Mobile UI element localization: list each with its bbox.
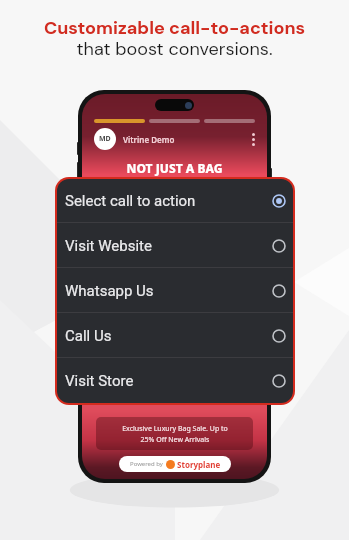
button[interactable]: Whatsapp Us (57, 268, 293, 313)
staticText: Vitrine Demo (123, 134, 175, 145)
button[interactable]: Select call to action (57, 179, 293, 223)
staticText: Storyplane (177, 459, 221, 470)
button[interactable]: Visit Store (57, 358, 293, 403)
button[interactable]: More options (252, 133, 255, 146)
staticText: NOT JUST A BAG (82, 160, 267, 176)
staticText: Visit Store (65, 372, 134, 390)
staticText: Visit Website (65, 237, 152, 255)
button[interactable]: Powered by (119, 456, 231, 472)
staticText: Select call to action (65, 192, 196, 210)
staticText: Exclusive Luxury Bag Sale. Up to 25% Off… (122, 424, 228, 444)
staticText: Call Us (65, 327, 112, 345)
button[interactable]: Visit Website (57, 223, 293, 268)
staticText: Whatsapp Us (65, 282, 154, 300)
button[interactable]: Call Us (57, 313, 293, 358)
staticText: Customizable call-to-actions (0, 16, 349, 39)
staticText: MD (99, 134, 111, 144)
staticText: Powered by (130, 460, 163, 468)
staticText: that boost conversions. (0, 37, 349, 60)
